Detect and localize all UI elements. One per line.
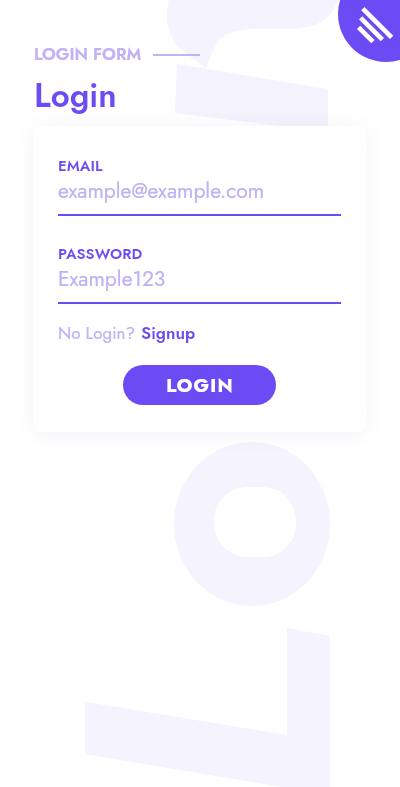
staticText: LOGIN xyxy=(166,372,234,399)
button[interactable]: Signup xyxy=(141,321,196,346)
staticText: Signup xyxy=(141,321,196,346)
staticText: No Login? xyxy=(58,321,141,346)
staticText: example@example.com xyxy=(58,176,265,206)
staticText: PASSWORD xyxy=(58,243,143,265)
staticText: Example123 xyxy=(58,264,166,294)
staticText: Login xyxy=(34,72,117,120)
staticText: EMAIL xyxy=(58,155,103,177)
staticText: LOGIN FORM xyxy=(34,42,142,67)
button[interactable]: Menu xyxy=(0,0,400,787)
button[interactable]: LOGIN xyxy=(123,365,276,405)
